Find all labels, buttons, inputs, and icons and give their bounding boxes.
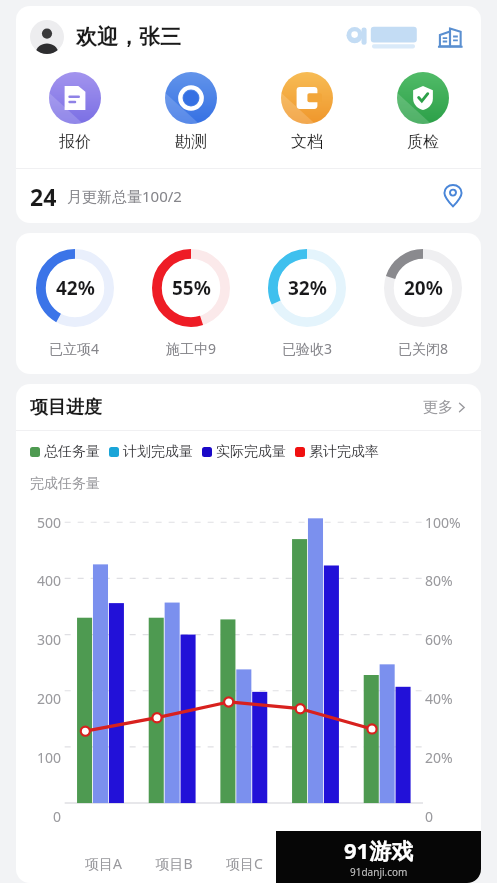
staticText: 40% <box>425 689 453 708</box>
staticText: 完成任务量 <box>30 475 100 493</box>
button[interactable]: 24 <box>16 169 481 223</box>
staticText: 计划完成量 <box>123 443 193 461</box>
staticText: 项目进度 <box>30 396 102 419</box>
button[interactable]: 质检 <box>365 72 481 152</box>
button[interactable]: 报价 <box>16 72 133 152</box>
button[interactable]: 更多 <box>423 398 467 417</box>
staticText: 32% <box>288 275 327 301</box>
staticText: 施工中9 <box>166 339 217 358</box>
button[interactable]: 文档 <box>249 72 365 152</box>
staticText: 项目B <box>155 854 193 873</box>
staticText: 总任务量 <box>44 443 100 461</box>
staticText: 月更新总量100/2 <box>67 186 182 206</box>
staticText: 报价 <box>59 132 91 152</box>
staticText: 300 <box>37 630 62 649</box>
staticText: 0 <box>53 807 62 826</box>
staticText: 项目C <box>226 854 263 873</box>
button[interactable]: 勘测 <box>133 72 249 152</box>
button[interactable]: 20% <box>365 249 481 358</box>
staticText: 91游戏 <box>344 835 414 865</box>
staticText: 500 <box>37 513 62 532</box>
staticText: 100 <box>37 748 62 767</box>
staticText: 项目E <box>366 854 402 873</box>
other: 位置 <box>439 182 467 210</box>
staticText: 质检 <box>407 132 439 152</box>
staticText: 累计完成率 <box>309 443 379 461</box>
staticText: 20% <box>404 275 443 301</box>
button[interactable]: 32% <box>249 249 365 358</box>
button[interactable]: 55% <box>133 249 249 358</box>
staticText: 已立项4 <box>49 339 100 358</box>
staticText: 勘测 <box>175 132 207 152</box>
staticText: 20% <box>425 748 453 767</box>
staticText: 400 <box>37 571 62 590</box>
button[interactable]: 42% <box>16 249 133 358</box>
staticText: 0 <box>425 807 434 826</box>
staticText: 200 <box>37 689 62 708</box>
staticText: 100% <box>425 513 461 532</box>
staticText: 实际完成量 <box>216 443 286 461</box>
staticText: 更多 <box>423 398 453 417</box>
button[interactable]: 公司 <box>433 20 467 54</box>
staticText: 24 <box>30 181 57 212</box>
staticText: 60% <box>425 630 453 649</box>
staticText: 80% <box>425 571 453 590</box>
staticText: 文档 <box>291 132 323 152</box>
staticText: 已关闭8 <box>398 339 449 358</box>
staticText: 55% <box>172 275 211 301</box>
staticText: 欢迎，张三 <box>76 24 181 50</box>
staticText: 项目A <box>85 854 122 873</box>
staticText: 已验收3 <box>282 339 333 358</box>
staticText: 42% <box>56 275 95 301</box>
staticText: 91danji.com <box>350 865 408 879</box>
